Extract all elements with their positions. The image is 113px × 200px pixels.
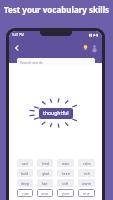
button[interactable]: Profile	[89, 42, 99, 52]
button[interactable]: glad	[37, 169, 53, 177]
staticText: 9:41 PM	[12, 33, 24, 37]
staticText: rich	[84, 171, 90, 176]
button[interactable]: kind	[37, 159, 53, 167]
button[interactable]: thoughtful	[39, 108, 73, 119]
button[interactable]: neat	[37, 189, 53, 197]
button[interactable]: Hint	[80, 42, 90, 52]
button[interactable]: Back	[11, 42, 22, 53]
staticText: fair	[42, 181, 48, 186]
staticText: keen	[62, 171, 70, 176]
button[interactable]: pure	[57, 189, 74, 197]
staticText: sad	[22, 161, 28, 166]
button[interactable]: rich	[78, 169, 95, 177]
staticText: cute	[22, 191, 29, 196]
staticText: warm	[82, 181, 92, 186]
staticText: soft	[62, 181, 69, 186]
staticText: calm	[83, 161, 91, 166]
staticText: neat	[41, 191, 49, 196]
staticText: kind	[42, 161, 49, 166]
button[interactable]: cute	[17, 189, 33, 197]
button[interactable]: fair	[37, 179, 53, 187]
staticText: Search words	[20, 60, 43, 65]
button[interactable]: Search words	[17, 58, 95, 66]
button[interactable]: wise	[57, 159, 74, 167]
button[interactable]: sad	[17, 159, 33, 167]
button[interactable]: bold	[17, 169, 33, 177]
staticText: Test your vocabulary skills	[0, 4, 113, 15]
staticText: wise	[62, 161, 70, 166]
button[interactable]: true	[78, 189, 95, 197]
staticText: ▮▮ ▶ ▮	[89, 33, 99, 37]
staticText: glad	[42, 171, 49, 176]
button[interactable]: soft	[57, 179, 74, 187]
staticText: pure	[62, 191, 70, 196]
staticText: deep	[21, 181, 29, 186]
staticText: true	[83, 191, 90, 196]
button[interactable]: deep	[17, 179, 33, 187]
staticText: thoughtful	[43, 110, 69, 117]
button[interactable]: warm	[78, 179, 95, 187]
button[interactable]: keen	[57, 169, 74, 177]
staticText: bold	[21, 171, 29, 176]
button[interactable]: calm	[78, 159, 95, 167]
